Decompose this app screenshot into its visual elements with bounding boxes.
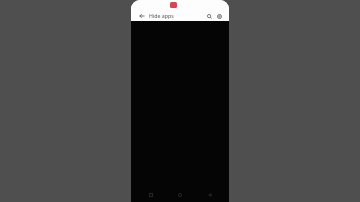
- staticText: Hide apps: [149, 12, 174, 19]
- button[interactable]: Back: [200, 188, 220, 202]
- button[interactable]: Recent apps: [141, 188, 161, 202]
- button[interactable]: Settings: [214, 11, 224, 21]
- button[interactable]: Search: [204, 11, 214, 21]
- button[interactable]: Home: [170, 188, 190, 202]
- button[interactable]: Hide apps: [149, 10, 204, 21]
- button[interactable]: Back: [138, 12, 146, 20]
